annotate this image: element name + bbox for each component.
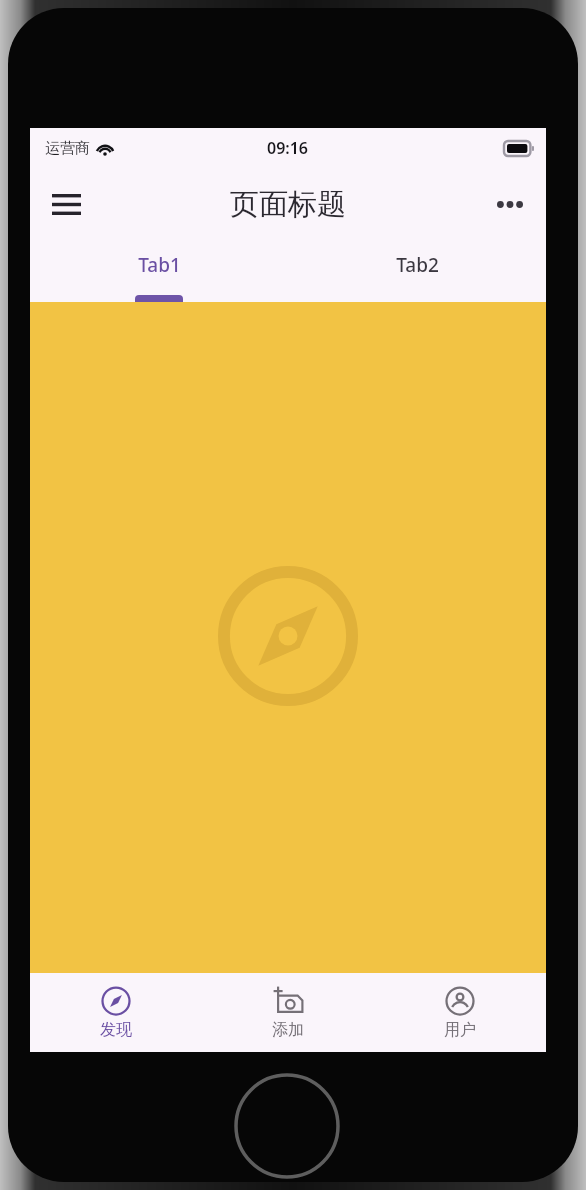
staticText: Tab2 [396, 252, 439, 278]
button[interactable]: 添加 [202, 973, 374, 1052]
button[interactable]: Menu [38, 176, 94, 232]
staticText: 用户 [444, 1020, 476, 1040]
button[interactable]: Tab1 [30, 240, 288, 302]
other: Home [232, 1071, 342, 1181]
button[interactable]: More options [482, 176, 538, 232]
button[interactable]: Tab2 [288, 240, 546, 302]
button[interactable]: 发现 [30, 973, 202, 1052]
staticText: 页面标题 [230, 186, 346, 223]
staticText: 09:16 [267, 137, 309, 159]
staticText: 发现 [100, 1020, 132, 1040]
button[interactable]: 用户 [374, 973, 546, 1052]
staticText: 运营商 [45, 139, 90, 158]
staticText: Tab1 [138, 252, 181, 278]
staticText: 添加 [272, 1020, 304, 1040]
